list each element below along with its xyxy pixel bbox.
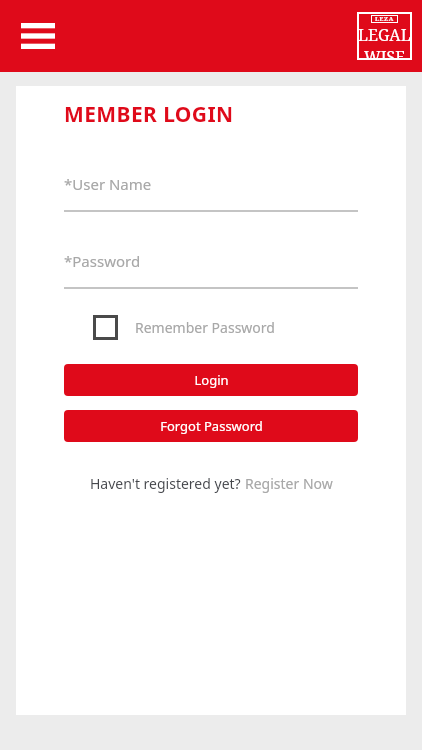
staticText: Login (194, 371, 229, 389)
staticText: WISE (364, 46, 406, 60)
staticText: Register Now (245, 474, 333, 493)
button[interactable]: Remember Password (93, 315, 275, 340)
staticText: Forgot Password (160, 417, 263, 435)
button[interactable]: Register Now (245, 474, 333, 493)
staticText: Remember Password (135, 318, 275, 337)
button[interactable]: Login (64, 364, 358, 396)
staticText: *Password (64, 251, 141, 271)
staticText: LEZA (375, 15, 394, 23)
button[interactable]: Open navigation menu (14, 12, 62, 60)
staticText: LEGAL (358, 24, 411, 46)
staticText: MEMBER LOGIN (64, 100, 234, 129)
staticText: Haven't registered yet? (90, 474, 245, 493)
button[interactable]: Forgot Password (64, 410, 358, 442)
button[interactable]: LegalWise logo (357, 12, 412, 60)
staticText: *User Name (64, 174, 152, 194)
